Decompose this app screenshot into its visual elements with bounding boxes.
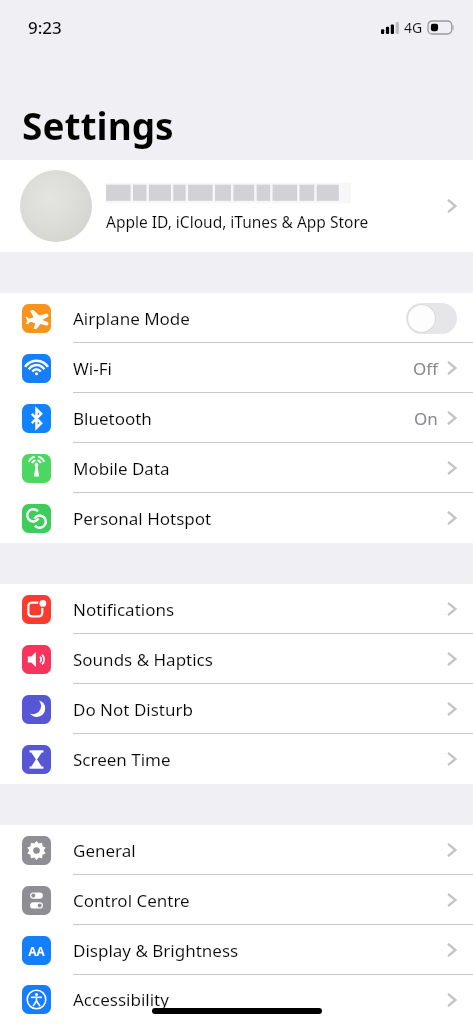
button[interactable]: Control Centre (0, 875, 473, 925)
staticText: Wi-Fi (73, 357, 413, 380)
staticText: General (73, 839, 446, 862)
staticText: 4G (404, 18, 423, 37)
button[interactable]: Do Not Disturb (0, 684, 473, 734)
staticText: Settings (22, 100, 174, 150)
button[interactable]: General (0, 825, 473, 875)
button[interactable]: Wi-Fi (0, 343, 473, 393)
button[interactable]: Airplane Mode (0, 293, 473, 343)
button[interactable]: Accessibility (0, 975, 473, 1024)
button[interactable]: Mobile Data (0, 443, 473, 493)
button[interactable]: Screen Time (0, 734, 473, 784)
staticText: Screen Time (73, 748, 446, 771)
button[interactable]: Apple ID, iCloud, iTunes & App Store (0, 160, 473, 252)
button[interactable]: AA (0, 925, 473, 975)
staticText: Mobile Data (73, 457, 446, 480)
staticText: Do Not Disturb (73, 698, 446, 721)
staticText: Apple ID, iCloud, iTunes & App Store (106, 211, 369, 232)
staticText: Control Centre (73, 889, 446, 912)
button[interactable]: Bluetooth (0, 393, 473, 443)
staticText: Personal Hotspot (73, 507, 446, 530)
button[interactable]: Sounds & Haptics (0, 634, 473, 684)
staticText: Bluetooth (73, 407, 414, 430)
staticText: Airplane Mode (73, 307, 406, 330)
staticText: 9:23 (28, 16, 62, 39)
staticText: AA (28, 943, 45, 959)
staticText: Display & Brightness (73, 939, 446, 962)
staticText: Accessibility (73, 988, 446, 1011)
button[interactable]: Personal Hotspot (0, 493, 473, 543)
staticText: On (414, 407, 438, 430)
button[interactable]: Notifications (0, 584, 473, 634)
staticText: Off (413, 357, 438, 380)
staticText: Sounds & Haptics (73, 648, 446, 671)
staticText: Notifications (73, 598, 446, 621)
